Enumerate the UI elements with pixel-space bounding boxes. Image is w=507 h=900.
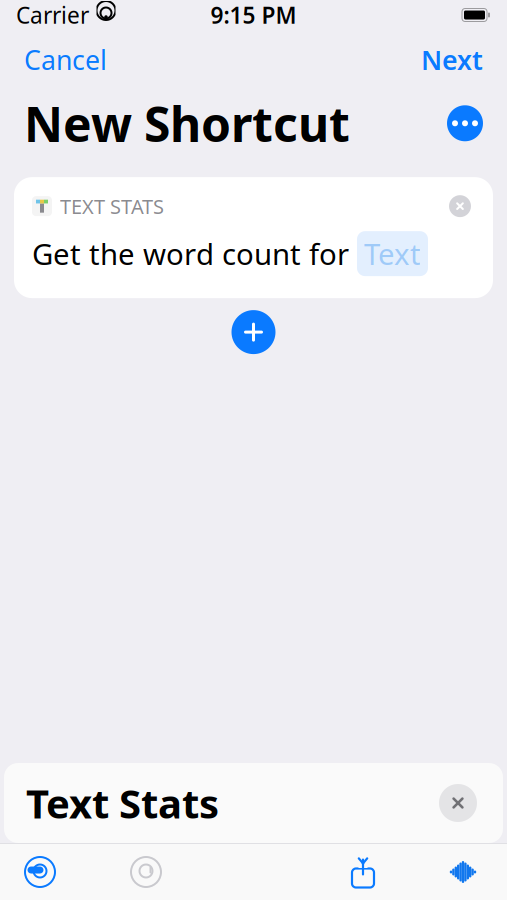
button[interactable]: Next xyxy=(407,36,497,83)
staticText: Carrier xyxy=(16,0,89,30)
button[interactable]: Redo xyxy=(124,850,168,894)
button[interactable]: More options xyxy=(447,105,483,141)
staticText: Get the word count for xyxy=(32,234,349,273)
button[interactable]: Undo xyxy=(18,850,62,894)
staticText: Cancel xyxy=(24,42,107,77)
button[interactable]: Close xyxy=(435,780,481,826)
staticText: New Shortcut xyxy=(24,91,350,155)
button[interactable]: Run shortcut xyxy=(441,850,485,894)
staticText: Text Stats xyxy=(26,776,219,829)
button[interactable]: Remove action xyxy=(445,191,475,221)
button[interactable]: Share xyxy=(341,850,385,894)
button[interactable]: Add action xyxy=(227,306,279,358)
staticText: Next xyxy=(421,42,483,77)
staticText: 9:15 PM xyxy=(210,0,296,30)
staticText: TEXT STATS xyxy=(60,193,164,219)
button[interactable]: Cancel xyxy=(10,36,121,83)
staticText: Text xyxy=(364,234,421,273)
